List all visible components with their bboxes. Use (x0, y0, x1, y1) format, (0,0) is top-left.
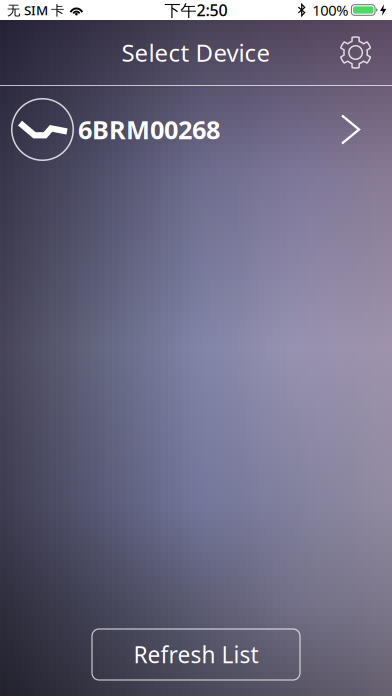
staticText: Refresh List (133, 639, 258, 669)
staticText: 下午2:50 (164, 0, 227, 21)
staticText: Select Device (121, 37, 270, 68)
button[interactable]: Settings (334, 30, 378, 74)
staticText: 100% (312, 0, 348, 20)
staticText: 6BRM00268 (78, 113, 220, 146)
button[interactable]: 6BRM00268 (0, 86, 392, 173)
staticText: 无 SIM 卡 (7, 1, 64, 19)
button[interactable]: Refresh List (92, 629, 300, 680)
